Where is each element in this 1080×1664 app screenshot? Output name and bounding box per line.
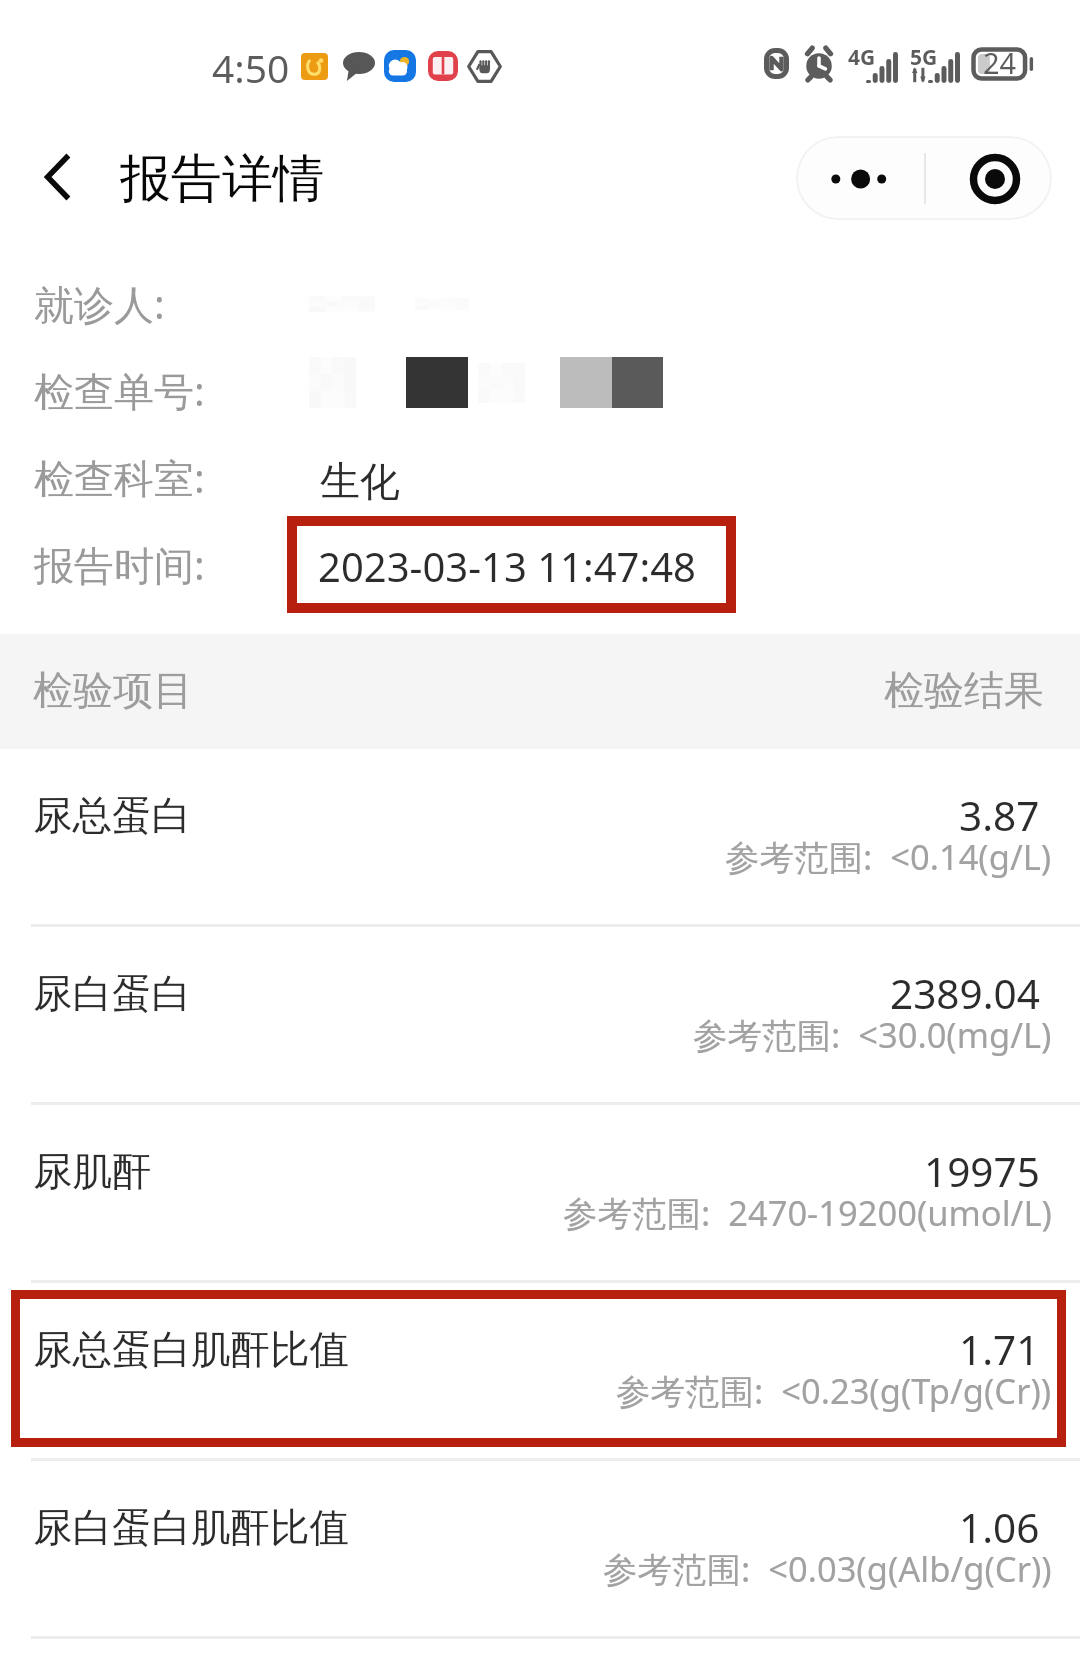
staticText: 参考范围: <30.0(mg/L) [693, 1011, 1052, 1058]
button[interactable]: 尿总蛋白肌酐比值 [0, 1283, 1080, 1461]
staticText: 2023-03-13 11:47:48 [318, 539, 696, 593]
staticText: 检查单号: [34, 363, 205, 418]
staticText: 生化 [320, 456, 400, 506]
button[interactable]: 尿白蛋白 [0, 927, 1080, 1105]
staticText: 就诊人: [34, 276, 165, 331]
staticText: 报告详情 [120, 147, 324, 211]
staticText: 参考范围: <0.03(g(Alb/g(Cr)) [603, 1545, 1052, 1592]
staticText: 1.06 [959, 1500, 1040, 1555]
staticText: 尿白蛋白肌酐比值 [33, 1503, 349, 1553]
staticText: 尿总蛋白 [33, 791, 191, 841]
staticText: 1.71 [959, 1322, 1040, 1377]
staticText: 2389.04 [890, 966, 1040, 1021]
staticText: 尿肌酐 [33, 1147, 152, 1197]
staticText: 4G [848, 43, 876, 72]
staticText: 报告时间: [34, 537, 205, 592]
staticText: 尿总蛋白肌酐比值 [33, 1325, 349, 1375]
button[interactable]: More options [796, 136, 924, 220]
staticText: 检验项目 [33, 665, 193, 715]
button[interactable]: Close mini program [932, 136, 1052, 220]
staticText: 尿白蛋白 [33, 969, 191, 1019]
button[interactable]: 尿白蛋白肌酐比值 [0, 1461, 1080, 1639]
staticText: 参考范围: <0.14(g/L) [725, 833, 1052, 880]
staticText: 19975 [924, 1144, 1040, 1199]
staticText: 参考范围: <0.23(g(Tp/g(Cr)) [616, 1367, 1052, 1414]
staticText: 24 [983, 43, 1017, 82]
button[interactable]: Back [14, 133, 102, 221]
staticText: 参考范围: 2470-19200(umol/L) [563, 1189, 1052, 1236]
staticText: 3.87 [959, 788, 1040, 843]
button[interactable]: 尿肌酐 [0, 1105, 1080, 1283]
staticText: 检验结果 [884, 665, 1044, 715]
staticText: 检查科室: [34, 450, 205, 505]
staticText: 4:50 [212, 41, 290, 91]
staticText: 5G [910, 43, 938, 72]
button[interactable]: 尿总蛋白 [0, 749, 1080, 927]
